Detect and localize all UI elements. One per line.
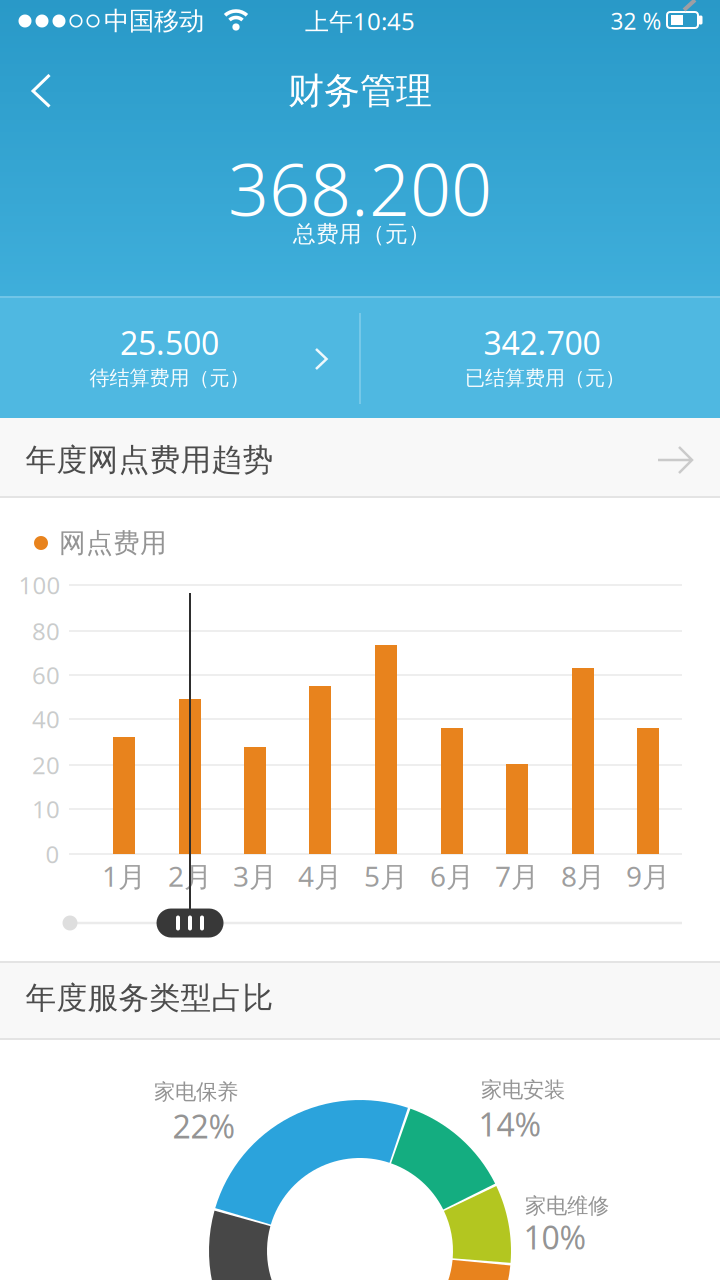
staticText: 14% <box>478 1103 541 1145</box>
staticText: 100 <box>18 569 60 601</box>
staticText: 10% <box>523 1216 586 1258</box>
staticText: 8月 <box>561 857 605 895</box>
staticText: 年度网点费用趋势 <box>25 441 273 479</box>
staticText: 家电安装 <box>481 1077 565 1103</box>
staticText: 4月 <box>298 857 342 895</box>
staticText: 5月 <box>364 857 408 895</box>
staticText: 0 <box>45 838 59 870</box>
staticText: 60 <box>32 659 60 691</box>
staticText: 总费用（元） <box>293 220 431 248</box>
staticText: 1月 <box>102 857 146 895</box>
staticText: 2月 <box>168 857 212 895</box>
staticText: 80 <box>32 615 60 647</box>
staticText: 6月 <box>430 857 474 895</box>
staticText: 20 <box>32 749 60 781</box>
staticText: 342.700 <box>483 321 600 364</box>
staticText: 40 <box>32 703 60 735</box>
staticText: 368.200 <box>228 140 492 236</box>
staticText: 32 % <box>610 6 661 36</box>
staticText: 25.500 <box>120 321 219 364</box>
staticText: 22% <box>172 1105 235 1147</box>
staticText: 待结算费用（元） <box>89 366 249 390</box>
staticText: 已结算费用（元） <box>465 366 625 390</box>
staticText: 财务管理 <box>288 69 432 113</box>
staticText: 3月 <box>233 857 277 895</box>
staticText: 9月 <box>626 857 670 895</box>
staticText: 10 <box>32 793 60 825</box>
staticText: 上午10:45 <box>305 5 415 37</box>
staticText: 7月 <box>495 857 539 895</box>
staticText: 年度服务类型占比 <box>25 979 273 1017</box>
staticText: 中国移动 <box>104 5 204 36</box>
staticText: 网点费用 <box>59 527 167 559</box>
staticText: 家电保养 <box>154 1079 238 1105</box>
staticText: 家电维修 <box>525 1193 609 1219</box>
